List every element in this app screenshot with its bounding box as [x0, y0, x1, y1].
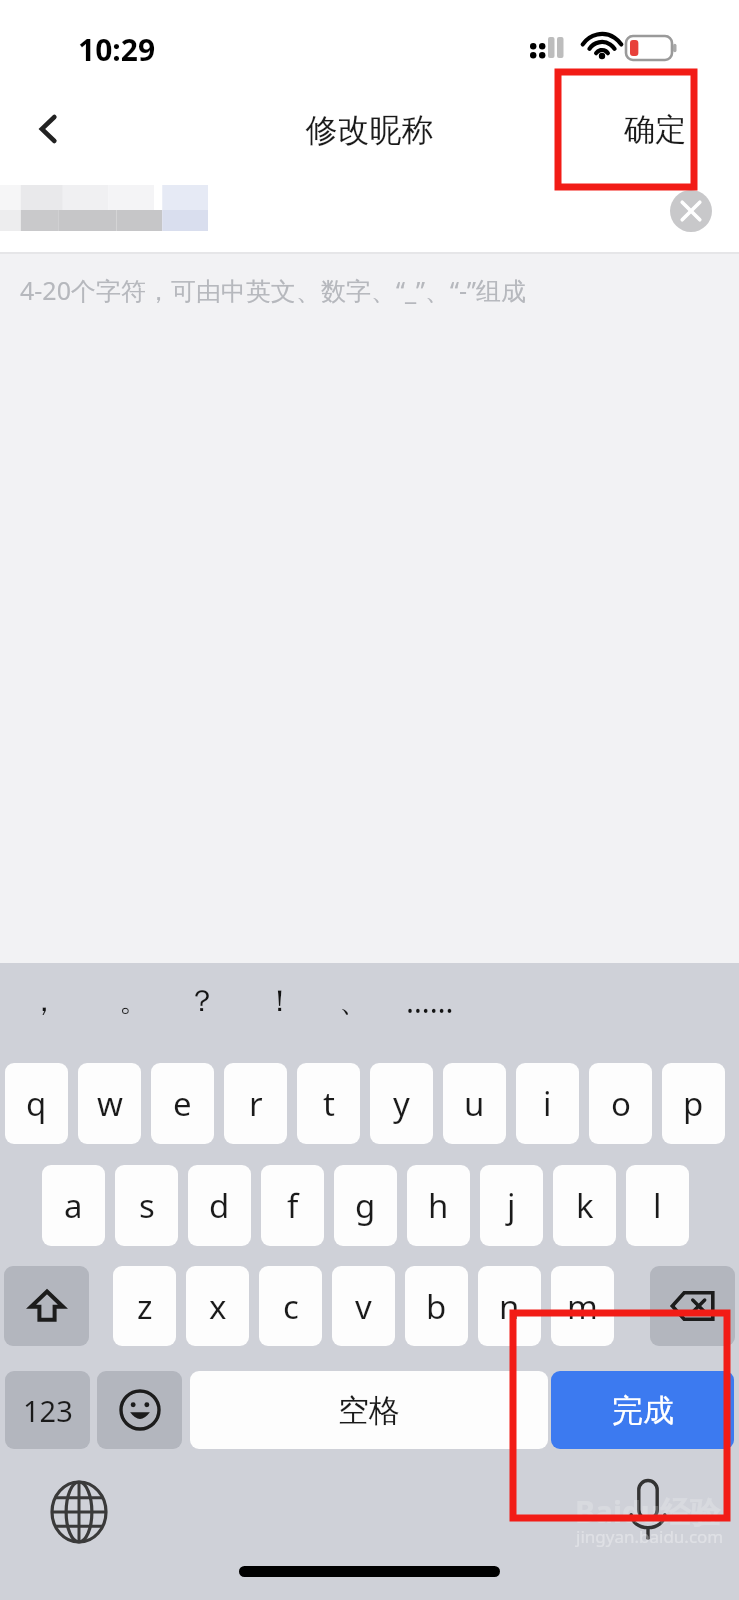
button[interactable]: t: [297, 1063, 360, 1144]
staticText: w: [97, 1081, 123, 1126]
staticText: g: [355, 1183, 376, 1228]
button[interactable]: 确定: [566, 100, 686, 158]
staticText: 空格: [338, 1391, 400, 1430]
button[interactable]: q: [5, 1063, 68, 1144]
button[interactable]: j: [480, 1165, 543, 1246]
button[interactable]: o: [589, 1063, 652, 1144]
staticText: 修改昵称: [0, 110, 739, 150]
button[interactable]: p: [662, 1063, 725, 1144]
button[interactable]: 空格: [190, 1371, 548, 1449]
staticText: n: [499, 1284, 520, 1329]
staticText: y: [393, 1081, 410, 1126]
button[interactable]: d: [188, 1165, 251, 1246]
staticText: ……: [406, 981, 454, 1022]
staticText: 10:29: [78, 29, 156, 70]
button[interactable]: Clear: [668, 188, 714, 234]
staticText: a: [64, 1183, 83, 1228]
staticText: 4-20个字符，可由中英文、数字、“_”、“-”组成: [20, 273, 527, 307]
button[interactable]: 完成: [551, 1371, 734, 1449]
staticText: u: [464, 1081, 485, 1126]
staticText: i: [543, 1081, 552, 1126]
staticText: d: [209, 1183, 230, 1228]
staticText: c: [283, 1284, 299, 1329]
button[interactable]: 、: [320, 970, 388, 1032]
button[interactable]: b: [405, 1266, 468, 1346]
staticText: s: [139, 1183, 155, 1228]
button[interactable]: v: [332, 1266, 395, 1346]
button[interactable]: s: [115, 1165, 178, 1246]
button[interactable]: ，: [10, 970, 78, 1032]
button[interactable]: Change language: [42, 1475, 116, 1549]
button[interactable]: y: [370, 1063, 433, 1144]
button[interactable]: Back: [16, 96, 82, 162]
staticText: z: [137, 1284, 153, 1329]
staticText: r: [249, 1081, 263, 1126]
button[interactable]: f: [261, 1165, 324, 1246]
button[interactable]: Shift: [4, 1266, 89, 1346]
staticText: v: [355, 1284, 372, 1329]
staticText: ！: [265, 982, 295, 1020]
button[interactable]: 。: [100, 970, 168, 1032]
staticText: o: [611, 1081, 631, 1126]
button[interactable]: a: [42, 1165, 105, 1246]
button[interactable]: e: [151, 1063, 214, 1144]
staticText: 确定: [624, 110, 686, 149]
button[interactable]: ……: [396, 970, 464, 1032]
staticText: b: [426, 1284, 447, 1329]
staticText: t: [323, 1081, 335, 1126]
staticText: q: [26, 1081, 47, 1126]
button[interactable]: n: [478, 1266, 541, 1346]
staticText: jingyan.baidu.com: [576, 1525, 724, 1548]
staticText: 。: [119, 982, 149, 1020]
staticText: p: [683, 1081, 704, 1126]
button[interactable]: ！: [246, 970, 314, 1032]
staticText: 完成: [612, 1391, 674, 1430]
staticText: h: [428, 1183, 449, 1228]
button[interactable]: 123: [5, 1371, 90, 1449]
staticText: f: [287, 1183, 299, 1228]
staticText: m: [567, 1284, 598, 1329]
staticText: ？: [187, 982, 217, 1020]
staticText: l: [653, 1183, 662, 1228]
button[interactable]: c: [259, 1266, 322, 1346]
button[interactable]: h: [407, 1165, 470, 1246]
button[interactable]: k: [553, 1165, 616, 1246]
staticText: j: [507, 1183, 516, 1228]
button[interactable]: Voice input: [612, 1473, 684, 1545]
staticText: k: [576, 1183, 594, 1228]
staticText: x: [209, 1284, 227, 1329]
button[interactable]: x: [186, 1266, 249, 1346]
staticText: e: [173, 1081, 192, 1126]
button[interactable]: r: [224, 1063, 287, 1144]
button[interactable]: u: [443, 1063, 506, 1144]
button[interactable]: m: [551, 1266, 614, 1346]
staticText: ，: [29, 982, 59, 1020]
button[interactable]: Emoji: [97, 1371, 182, 1449]
button[interactable]: l: [626, 1165, 689, 1246]
staticText: 123: [23, 1391, 73, 1430]
button[interactable]: w: [78, 1063, 141, 1144]
staticText: 、: [339, 982, 369, 1020]
button[interactable]: g: [334, 1165, 397, 1246]
staticText: Baidu经验: [575, 1491, 721, 1532]
button[interactable]: z: [113, 1266, 176, 1346]
button[interactable]: i: [516, 1063, 579, 1144]
button[interactable]: Backspace: [650, 1266, 735, 1346]
button[interactable]: ？: [168, 970, 236, 1032]
